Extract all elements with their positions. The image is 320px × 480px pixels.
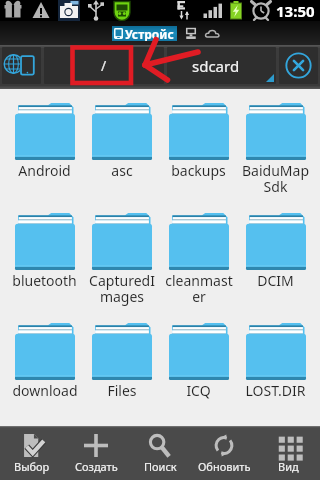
button[interactable]: Android: [6, 103, 83, 213]
staticText: bluetooth: [12, 271, 77, 290]
button[interactable]: CapturedI mages: [83, 213, 160, 323]
staticText: Обновить: [198, 459, 251, 474]
button[interactable]: ICQ: [160, 323, 237, 426]
staticText: backups: [171, 161, 226, 180]
button[interactable]: download: [6, 323, 83, 426]
staticText: Создать: [75, 459, 118, 474]
button[interactable]: cleanmast er: [160, 213, 237, 323]
staticText: Вид: [278, 459, 299, 474]
staticText: asc: [111, 161, 133, 180]
button[interactable]: bluetooth: [6, 213, 83, 323]
button[interactable]: DCIM: [237, 213, 314, 323]
staticText: ICQ: [186, 381, 211, 400]
staticText: Устройство: [125, 26, 177, 41]
staticText: sdcard: [192, 56, 240, 76]
button[interactable]: Устройство: [112, 26, 177, 41]
staticText: Выбор: [14, 459, 50, 474]
button[interactable]: BaiduMap Sdk: [237, 103, 314, 213]
button[interactable]: Обновить: [192, 426, 256, 480]
button[interactable]: Files: [83, 323, 160, 426]
button[interactable]: Browse device: [2, 47, 41, 84]
button[interactable]: sdcard: [167, 47, 276, 84]
staticText: DCIM: [257, 271, 294, 290]
staticText: BaiduMap Sdk: [242, 161, 309, 196]
button[interactable]: Поиск: [128, 426, 192, 480]
staticText: LOST.DIR: [245, 381, 306, 400]
staticText: /: [101, 56, 107, 75]
staticText: Files: [107, 381, 137, 400]
button[interactable]: Выбор: [0, 426, 64, 480]
staticText: download: [12, 381, 78, 400]
button[interactable]: LOST.DIR: [237, 323, 314, 426]
staticText: 13:50: [276, 1, 315, 21]
button[interactable]: asc: [83, 103, 160, 213]
button[interactable]: Cloud: [205, 27, 220, 40]
staticText: Поиск: [144, 459, 177, 474]
button[interactable]: backups: [160, 103, 237, 213]
button[interactable]: Close: [279, 47, 318, 84]
button[interactable]: Вид: [256, 426, 320, 480]
staticText: Android: [18, 161, 71, 180]
staticText: CapturedI mages: [89, 271, 155, 306]
button[interactable]: Computer: [184, 27, 198, 40]
staticText: cleanmast er: [165, 271, 233, 306]
button[interactable]: /: [44, 47, 164, 84]
button[interactable]: Создать: [64, 426, 128, 480]
